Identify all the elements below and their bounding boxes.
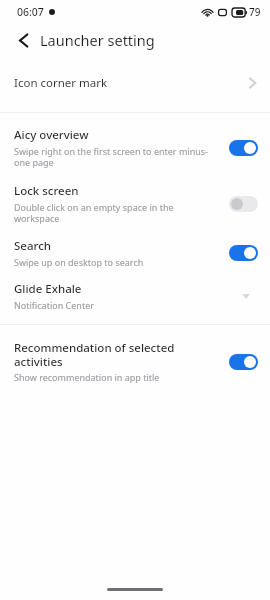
staticText: Glide Exhale [14,281,82,297]
button[interactable]: Recommendation of selected activities [0,340,270,383]
staticText: Lock screen [14,183,79,199]
staticText: Recommendation of selected activities [14,340,215,369]
button[interactable]: Off [229,196,258,212]
staticText: 06:07 [17,5,44,19]
button[interactable]: Glide Exhale [0,281,270,311]
button[interactable]: Aicy overview [0,127,270,169]
button[interactable]: Search [0,238,270,268]
staticText: Icon corner mark [14,75,249,91]
button[interactable]: On [229,354,258,370]
button[interactable]: Back [8,25,38,55]
staticText: Swipe up on desktop to search [14,256,144,268]
button[interactable]: Lock screen [0,183,270,225]
staticText: Swipe right on the first screen to enter… [14,145,215,169]
other: Expand [234,284,258,308]
staticText: 79 [249,5,261,19]
staticText: Aicy overview [14,127,89,143]
staticText: Launcher setting [40,30,155,50]
staticText: Notification Center [14,299,94,311]
button[interactable]: On [229,245,258,261]
button[interactable]: Icon corner mark [0,66,270,100]
button[interactable]: On [229,140,258,156]
staticText: Double click on an empty space in the wo… [14,201,215,225]
staticText: Search [14,238,51,254]
staticText: Show recommendation in app title [14,371,160,383]
